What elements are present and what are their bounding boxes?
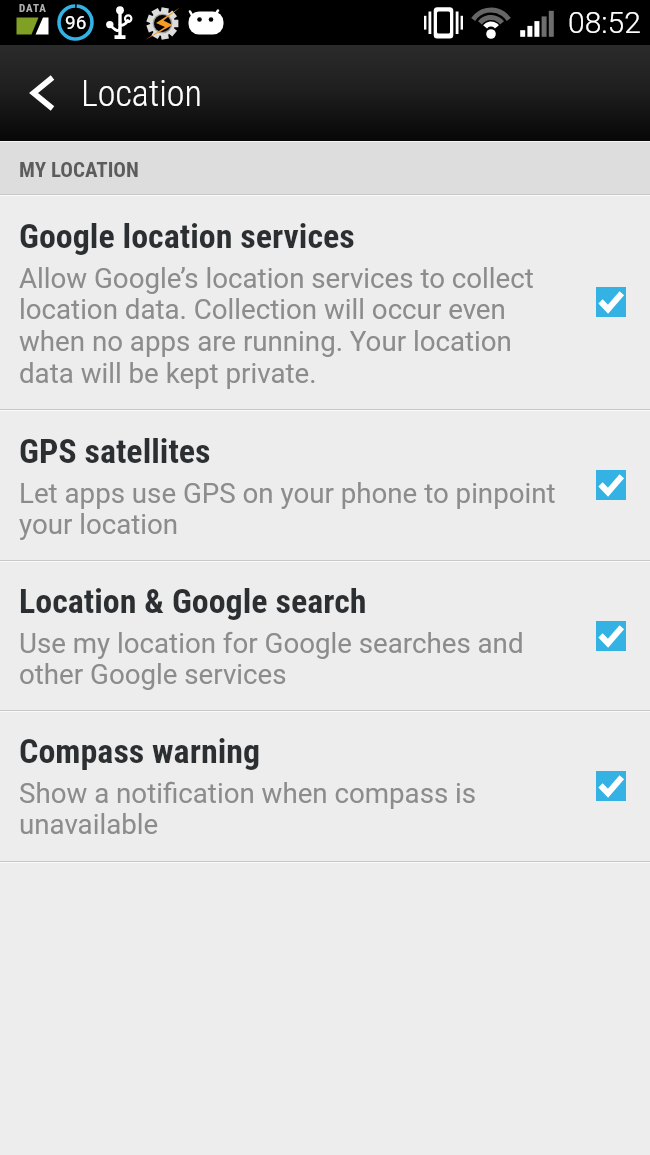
staticText: MY LOCATION — [19, 158, 139, 183]
staticText: Use my location for Google searches and … — [19, 627, 559, 691]
staticText: 96 — [65, 11, 87, 33]
button[interactable]: GPS satellites checkbox, checked — [596, 470, 626, 500]
staticText: Compass warning — [19, 731, 261, 771]
staticText: Let apps use GPS on your phone to pinpoi… — [19, 477, 579, 541]
button[interactable]: GPS satellites — [0, 411, 650, 560]
button[interactable]: Google location services checkbox, check… — [596, 287, 626, 317]
staticText: DATA — [19, 2, 47, 15]
button[interactable]: Google location services — [0, 196, 650, 409]
button[interactable]: Location & Google search — [0, 562, 650, 710]
button[interactable]: Location & Google search checkbox, check… — [596, 621, 626, 651]
staticText: 08:52 — [568, 5, 641, 40]
staticText: Location & Google search — [19, 581, 367, 621]
staticText: Show a notification when compass is unav… — [19, 777, 559, 841]
button[interactable]: Compass warning — [0, 712, 650, 861]
staticText: Allow Google’s location services to coll… — [19, 262, 559, 390]
staticText: Google location services — [19, 216, 355, 256]
staticText: GPS satellites — [19, 431, 211, 471]
button[interactable]: Navigate up — [0, 45, 78, 141]
button[interactable]: Compass warning checkbox, checked — [596, 771, 626, 801]
staticText: Location — [81, 73, 202, 115]
